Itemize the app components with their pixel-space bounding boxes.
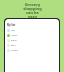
- button[interactable]: Milk: [5, 28, 59, 33]
- button[interactable]: Cheese: [5, 48, 59, 53]
- staticText: Milk: [11, 29, 15, 32]
- button[interactable]: Eggs: [5, 43, 59, 48]
- staticText: Grocery shopping can be easy: [23, 2, 42, 19]
- staticText: Eggs: [11, 44, 16, 47]
- button[interactable]: Bread: [5, 38, 59, 43]
- staticText: My list: [7, 23, 16, 26]
- staticText: Bread: [11, 39, 17, 42]
- staticText: Cheese: [11, 49, 18, 52]
- button[interactable]: Apples: [5, 33, 59, 38]
- staticText: Apples: [11, 34, 18, 37]
